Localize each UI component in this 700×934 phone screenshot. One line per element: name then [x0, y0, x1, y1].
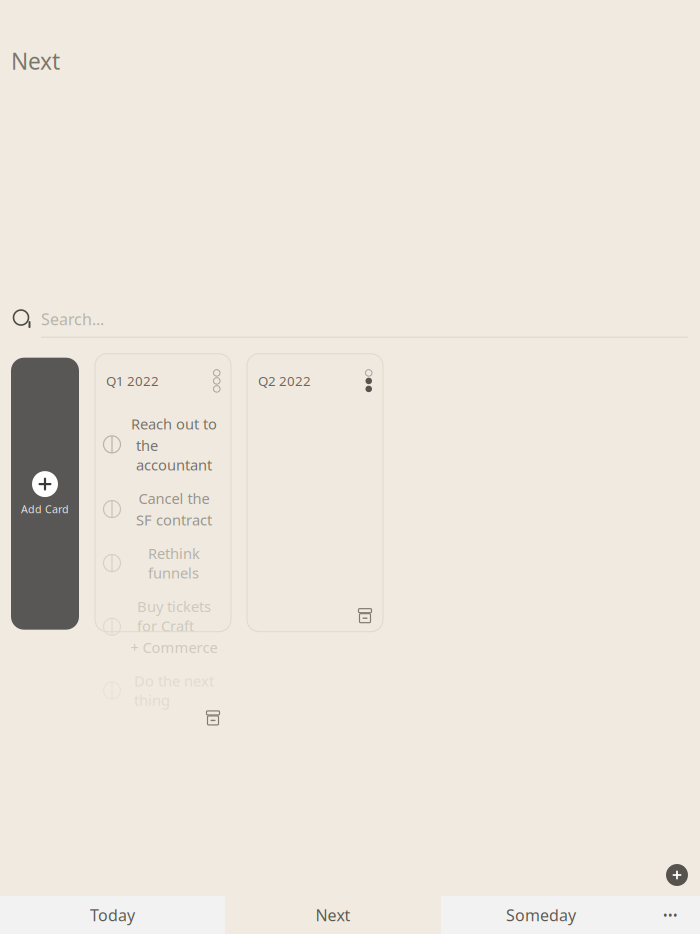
staticText: Search... — [41, 308, 104, 330]
staticText: Next — [11, 46, 60, 76]
staticText: + Commerce — [130, 637, 217, 657]
staticText: Rethink funnels — [148, 544, 200, 583]
staticText: Do the next thing — [134, 671, 214, 710]
button[interactable]: Close — [666, 864, 688, 886]
staticText: Reach out to — [131, 414, 217, 434]
staticText: ••• — [663, 907, 678, 923]
staticText: SF contract — [136, 510, 212, 530]
button[interactable]: Q2 2022 — [247, 354, 383, 632]
staticText: Someday — [506, 904, 576, 926]
staticText: Today — [90, 904, 135, 926]
staticText: the accountant — [136, 436, 212, 475]
button[interactable]: Today — [0, 896, 225, 934]
staticText: Cancel the — [138, 489, 209, 508]
button[interactable]: Someday — [441, 896, 641, 934]
button[interactable]: Q1 2022 — [95, 354, 231, 632]
button[interactable]: Next — [225, 896, 441, 934]
staticText: Next — [315, 904, 350, 926]
staticText: Add Card — [21, 502, 69, 516]
staticText: Buy tickets for Craft — [137, 596, 211, 635]
button[interactable]: Add Card — [11, 358, 79, 630]
button[interactable]: More options — [641, 896, 700, 934]
staticText: Q1 2022 — [106, 372, 159, 390]
staticText: Q2 2022 — [258, 372, 311, 390]
